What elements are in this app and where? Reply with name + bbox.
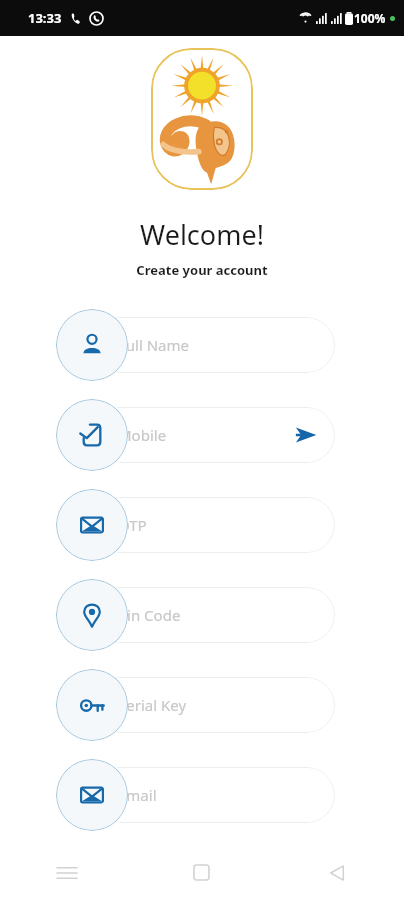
staticText: Full Name <box>118 335 321 355</box>
button[interactable]: Recent apps <box>0 845 134 900</box>
button[interactable]: Serial Key <box>92 677 335 733</box>
button[interactable]: Mobile <box>56 399 128 471</box>
staticText: Welcome! <box>140 216 264 253</box>
other: App logo <box>151 48 253 190</box>
staticText: Mobile <box>118 425 291 445</box>
button[interactable]: Email <box>56 759 128 831</box>
button[interactable]: Email <box>92 767 335 823</box>
staticText: OTP <box>118 515 321 535</box>
button[interactable]: Full Name <box>92 317 335 373</box>
button[interactable]: Home <box>134 845 269 900</box>
button[interactable]: Pin Code <box>92 587 335 643</box>
button[interactable]: Back <box>269 845 404 900</box>
staticText: 13:33 <box>28 9 62 27</box>
staticText: Serial Key <box>118 695 321 715</box>
staticText: Email <box>118 785 321 805</box>
staticText: Create your account <box>136 261 268 279</box>
button[interactable]: Serial Key <box>56 669 128 741</box>
button[interactable]: OTP <box>92 497 335 553</box>
staticText: Pin Code <box>118 605 321 625</box>
button[interactable]: OTP <box>56 489 128 561</box>
button[interactable]: Full Name <box>56 309 128 381</box>
button[interactable]: Send OTP <box>291 420 321 450</box>
button[interactable]: Mobile <box>92 407 335 463</box>
button[interactable]: Pin Code <box>56 579 128 651</box>
staticText: 100% <box>354 10 386 26</box>
